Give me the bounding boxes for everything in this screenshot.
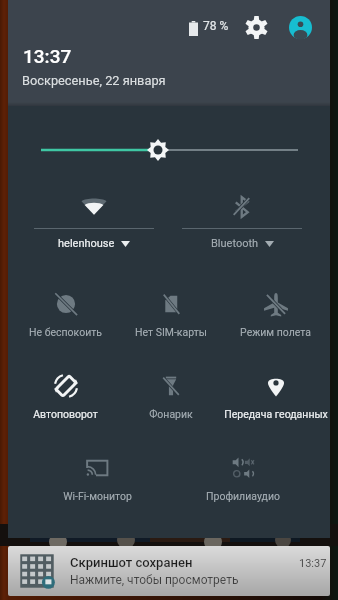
staticText: 13:37 [23, 45, 72, 67]
staticText: Автоповорот [33, 408, 98, 420]
staticText: Режим полета [240, 326, 311, 338]
button[interactable]: Автоповорот [13, 363, 118, 445]
button[interactable]: Нет SIM-карты [118, 281, 223, 363]
button[interactable]: Не беспокоить [13, 281, 118, 363]
staticText: helenhouse [58, 237, 115, 250]
staticText: Воскресенье, 22 января [22, 73, 166, 88]
button[interactable]: Профилиаудио [170, 445, 316, 527]
button[interactable]: User account [282, 9, 318, 45]
button[interactable]: Режим полета [223, 281, 328, 363]
staticText: Нет SIM-карты [135, 326, 207, 338]
staticText: Wi-Fi-монитор [63, 490, 132, 502]
button[interactable]: helenhouse [20, 186, 168, 266]
staticText: Профилиаудио [206, 490, 280, 502]
button[interactable]: Скриншот сохранен [8, 546, 330, 596]
staticText: Нажмите, чтобы просмотреть [70, 573, 239, 587]
button[interactable]: Передача геоданных [223, 363, 328, 445]
button[interactable]: Bluetooth [168, 186, 316, 266]
button[interactable]: Фонарик [118, 363, 223, 445]
button[interactable]: Wi-Fi-монитор [24, 445, 170, 527]
button[interactable]: Settings [238, 9, 274, 45]
staticText: Не беспокоить [29, 326, 102, 338]
staticText: 78 % [203, 19, 229, 33]
staticText: Передача геоданных [224, 408, 328, 420]
staticText: Фонарик [149, 408, 193, 420]
staticText: Скриншот сохранен [70, 555, 193, 570]
staticText: Bluetooth [211, 237, 259, 250]
staticText: 13:37 [299, 557, 327, 570]
